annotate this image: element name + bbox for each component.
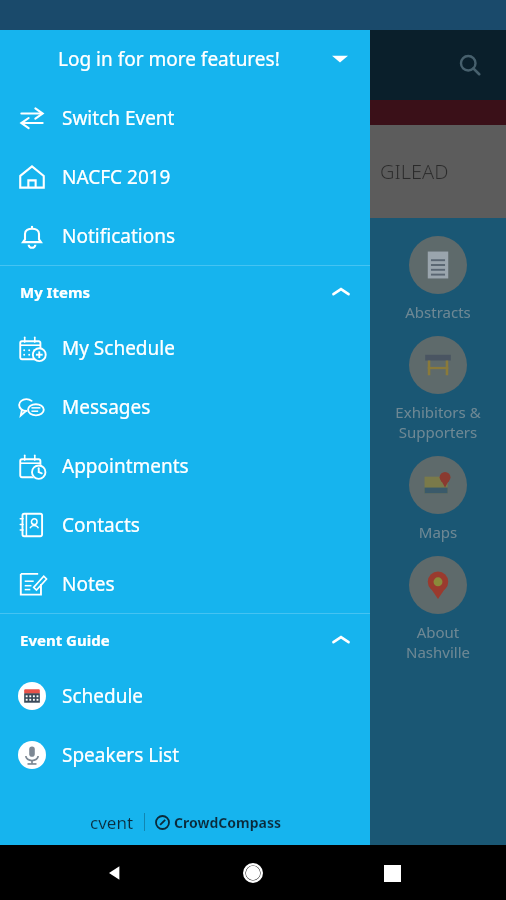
button[interactable]: Abstracts: [370, 228, 506, 328]
button[interactable]: About Nashville: [370, 548, 506, 668]
button[interactable]: My Schedule: [0, 318, 370, 377]
button[interactable]: Contacts: [0, 495, 370, 554]
staticText: Messages: [62, 394, 151, 420]
button[interactable]: My Items: [0, 266, 370, 318]
button[interactable]: NACFC 2019: [0, 147, 370, 206]
button[interactable]: Notes: [0, 554, 370, 613]
button[interactable]: Switch Event: [0, 88, 370, 147]
button[interactable]: Exhibitors & Supporters: [370, 328, 506, 448]
staticText: About Nashville: [370, 622, 506, 662]
staticText: Speakers List: [62, 742, 180, 768]
button[interactable]: Appointments: [0, 436, 370, 495]
staticText: Abstracts: [370, 302, 506, 322]
staticText: Notes: [62, 571, 115, 597]
button[interactable]: Speakers List: [0, 725, 370, 784]
staticText: My Items: [20, 282, 91, 302]
staticText: My Schedule: [62, 335, 175, 361]
staticText: Log in for more features!: [58, 46, 280, 72]
staticText: Maps: [370, 522, 506, 542]
button[interactable]: Event Guide: [0, 614, 370, 666]
staticText: Switch Event: [62, 105, 175, 131]
button[interactable]: Log in for more features!: [0, 30, 370, 88]
staticText: GILEAD: [380, 158, 449, 185]
staticText: Appointments: [62, 453, 189, 479]
staticText: Event Guide: [20, 630, 110, 650]
button[interactable]: Back: [91, 849, 139, 897]
staticText: Exhibitors & Supporters: [370, 402, 506, 442]
staticText: CrowdCompass: [174, 813, 281, 832]
button[interactable]: Home: [229, 849, 277, 897]
button[interactable]: Notifications: [0, 206, 370, 265]
button[interactable]: Recents: [368, 849, 416, 897]
staticText: Schedule: [62, 683, 144, 709]
button[interactable]: Schedule: [0, 666, 370, 725]
button[interactable]: Maps: [370, 448, 506, 548]
staticText: Contacts: [62, 512, 140, 538]
staticText: NACFC 2019: [62, 164, 171, 190]
button[interactable]: Search: [448, 43, 492, 87]
staticText: cvent: [90, 811, 134, 834]
button[interactable]: Messages: [0, 377, 370, 436]
staticText: Notifications: [62, 223, 176, 249]
